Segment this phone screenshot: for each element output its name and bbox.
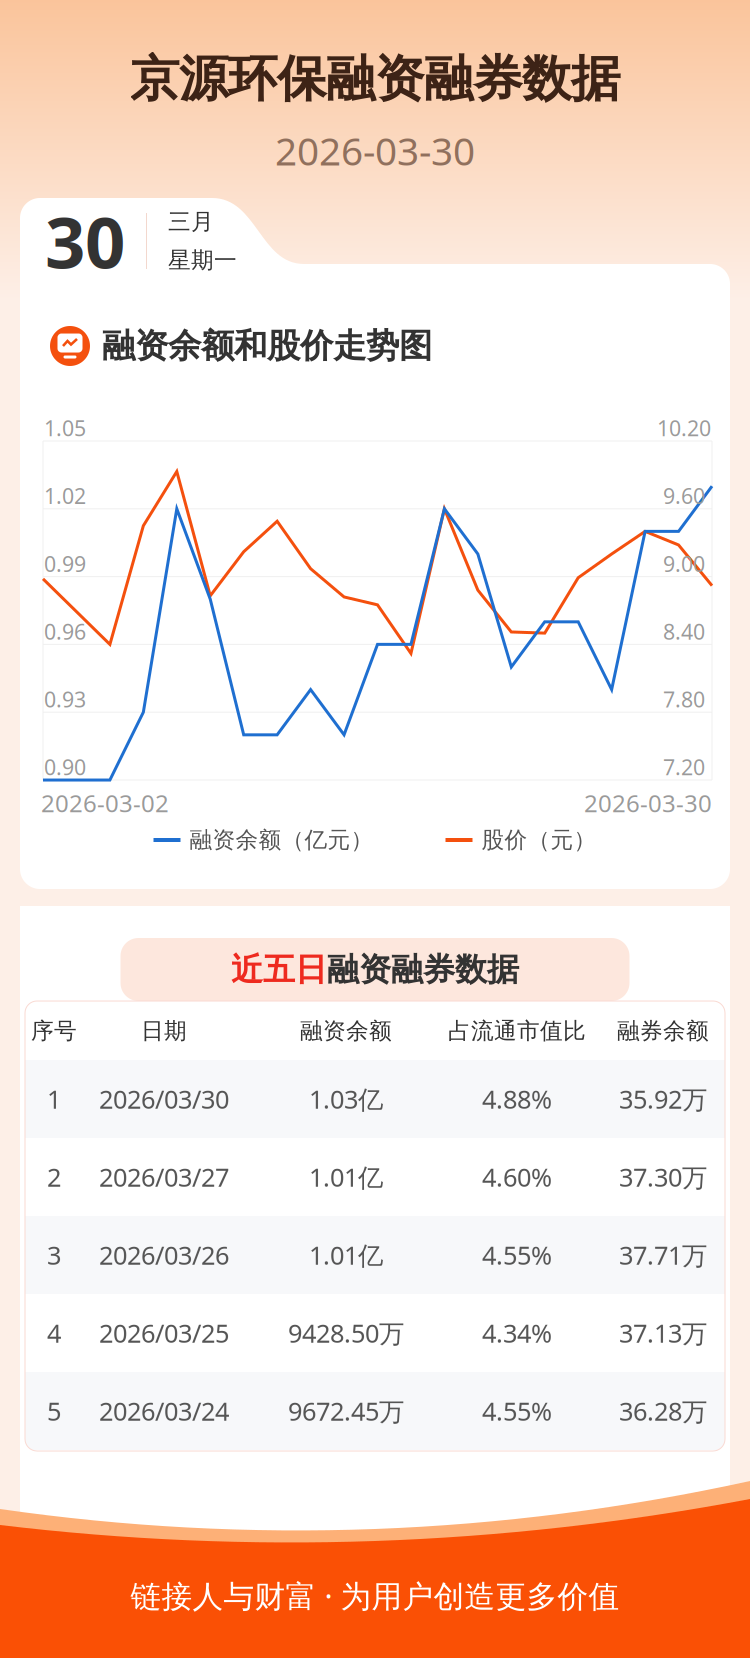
staticText: 4.60% [482, 1160, 552, 1194]
staticText: 4.55% [482, 1394, 552, 1428]
staticText: 7.20 [663, 752, 705, 782]
staticText: 2026/03/27 [99, 1160, 229, 1194]
staticText: 1.01亿 [309, 1160, 383, 1194]
staticText: 10.20 [657, 413, 711, 443]
staticText: 2026/03/30 [99, 1082, 229, 1116]
staticText: 1 [47, 1082, 61, 1116]
staticText: 35.92万 [619, 1082, 707, 1116]
staticText: 序号 [31, 1017, 77, 1045]
staticText: 37.30万 [619, 1160, 707, 1194]
staticText: 4 [47, 1316, 61, 1350]
staticText: 0.93 [44, 685, 86, 714]
staticText: 5 [47, 1394, 61, 1428]
staticText: 融资融券数据 [327, 949, 519, 990]
staticText: 1.03亿 [309, 1082, 383, 1116]
staticText: 7.80 [663, 685, 705, 714]
staticText: 0.96 [44, 617, 86, 646]
staticText: 36.28万 [619, 1394, 707, 1428]
staticText: 37.13万 [619, 1316, 707, 1350]
staticText: 9672.45万 [288, 1394, 404, 1428]
staticText: 2026/03/25 [99, 1316, 229, 1350]
staticText: 融券余额 [617, 1017, 709, 1045]
staticText: 融资余额（亿元） [189, 826, 373, 854]
staticText: 1.01亿 [309, 1238, 383, 1272]
staticText: 4.88% [482, 1082, 552, 1116]
staticText: 星期一 [168, 246, 237, 275]
staticText: 股价（元） [481, 826, 596, 854]
staticText: 2026-03-30 [275, 124, 475, 177]
staticText: 日期 [141, 1017, 187, 1045]
staticText: 1.05 [44, 413, 86, 443]
staticText: 9.60 [663, 481, 705, 510]
staticText: 链接人与财富 · 为用户创造更多价值 [130, 1575, 619, 1616]
staticText: 占流通市值比 [448, 1017, 586, 1045]
staticText: 0.90 [44, 752, 86, 782]
staticText: 9428.50万 [288, 1316, 404, 1350]
staticText: 2026/03/26 [99, 1238, 229, 1272]
staticText: 融资余额 [300, 1017, 392, 1045]
staticText: 京源环保融资融券数据 [130, 48, 620, 110]
staticText: 8.40 [663, 617, 705, 646]
staticText: 近五日 [231, 949, 327, 990]
staticText: 4.34% [482, 1316, 552, 1350]
staticText: 2026/03/24 [99, 1394, 229, 1428]
staticText: 融资余额和股价走势图 [102, 325, 432, 367]
staticText: 2026-03-30 [584, 787, 712, 819]
staticText: 2 [47, 1160, 61, 1194]
staticText: 9.00 [663, 549, 705, 578]
staticText: 2026-03-02 [41, 787, 169, 819]
staticText: 1.02 [44, 481, 86, 510]
staticText: 3 [47, 1238, 61, 1272]
staticText: 三月 [168, 207, 214, 236]
staticText: 0.99 [44, 549, 86, 578]
staticText: 4.55% [482, 1238, 552, 1272]
staticText: 30 [45, 193, 125, 289]
staticText: 37.71万 [619, 1238, 707, 1272]
